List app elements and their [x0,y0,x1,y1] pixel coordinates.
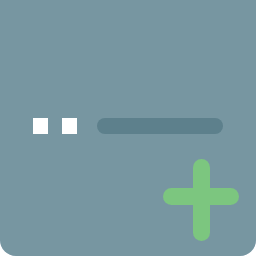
button[interactable]: Add new tab [160,159,242,241]
button[interactable]: Address bar [97,118,223,134]
